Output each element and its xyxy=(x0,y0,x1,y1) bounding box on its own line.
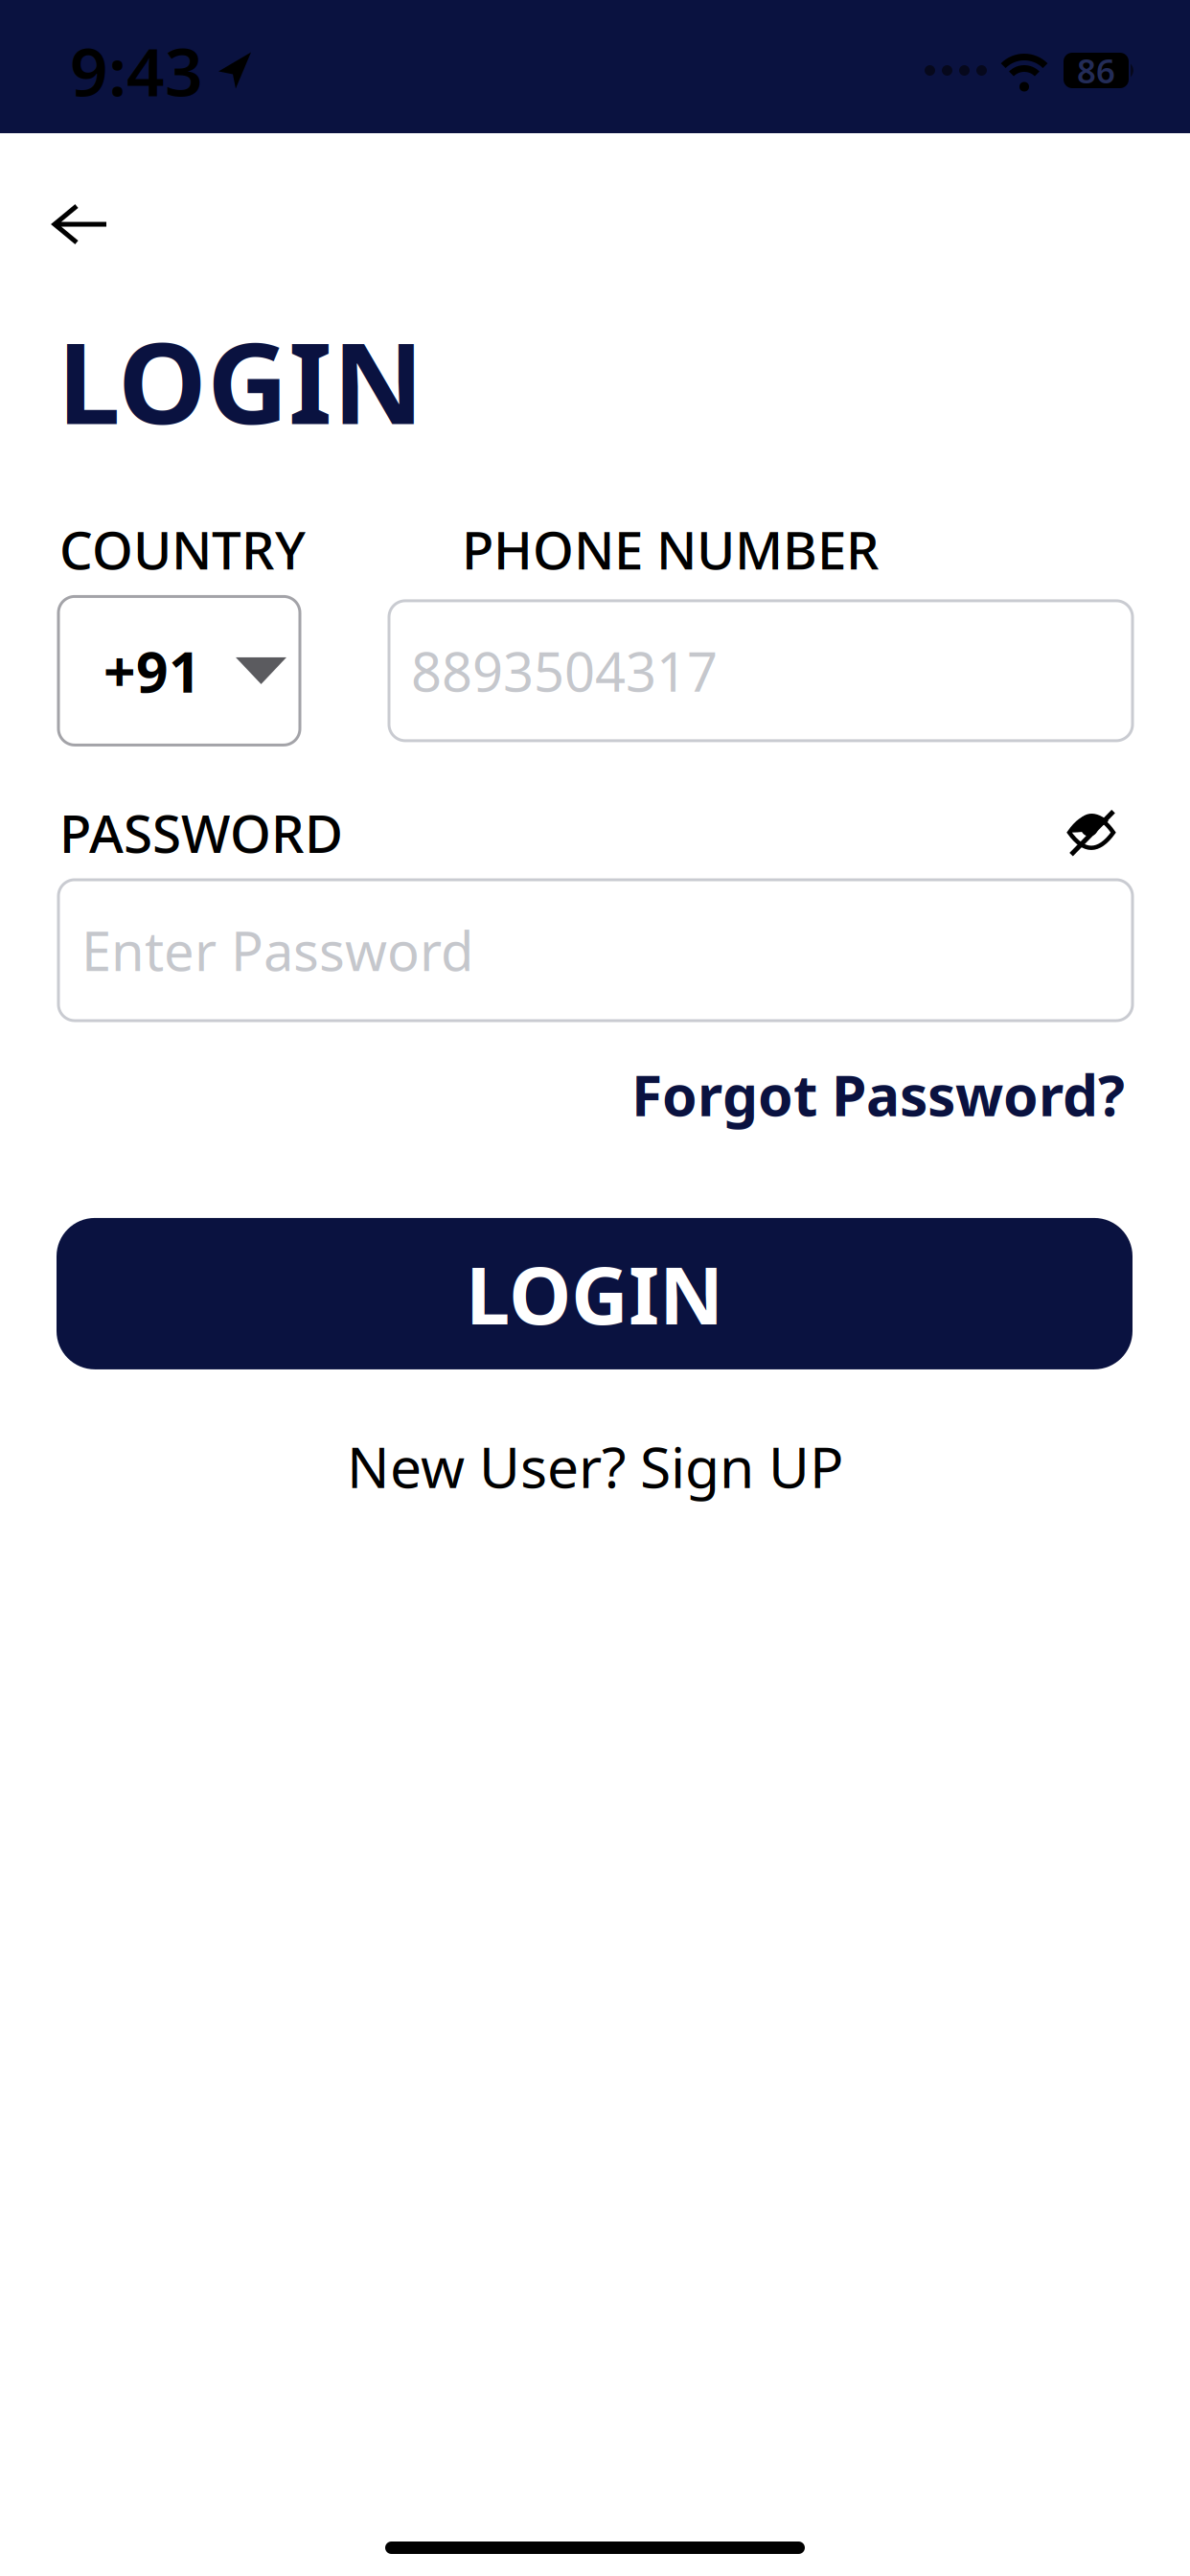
staticText: 9:43 xyxy=(70,26,203,115)
button[interactable]: Phone number xyxy=(389,601,1133,741)
staticText: Enter Password xyxy=(81,915,473,986)
button[interactable]: LOGIN xyxy=(57,1218,1133,1369)
staticText: LOGIN xyxy=(466,1241,723,1346)
staticText: LOGIN xyxy=(57,306,423,455)
button[interactable]: Show password xyxy=(1067,810,1115,856)
staticText: New User? Sign UP xyxy=(347,1429,843,1503)
button[interactable]: Country code +91 xyxy=(58,596,300,745)
staticText: PHONE NUMBER xyxy=(462,514,880,584)
staticText: Forgot Password? xyxy=(631,1057,1125,1132)
button[interactable]: Forgot Password? xyxy=(631,1057,1125,1132)
staticText: PASSWORD xyxy=(59,798,343,867)
staticText: COUNTRY xyxy=(59,514,306,584)
staticText: 8893504317 xyxy=(411,635,718,706)
button[interactable]: Enter Password xyxy=(58,880,1133,1021)
staticText: +91 xyxy=(103,633,201,708)
button[interactable]: Back xyxy=(53,204,108,244)
staticText: 86 xyxy=(1077,48,1115,92)
button[interactable]: New User? Sign UP xyxy=(347,1429,843,1503)
